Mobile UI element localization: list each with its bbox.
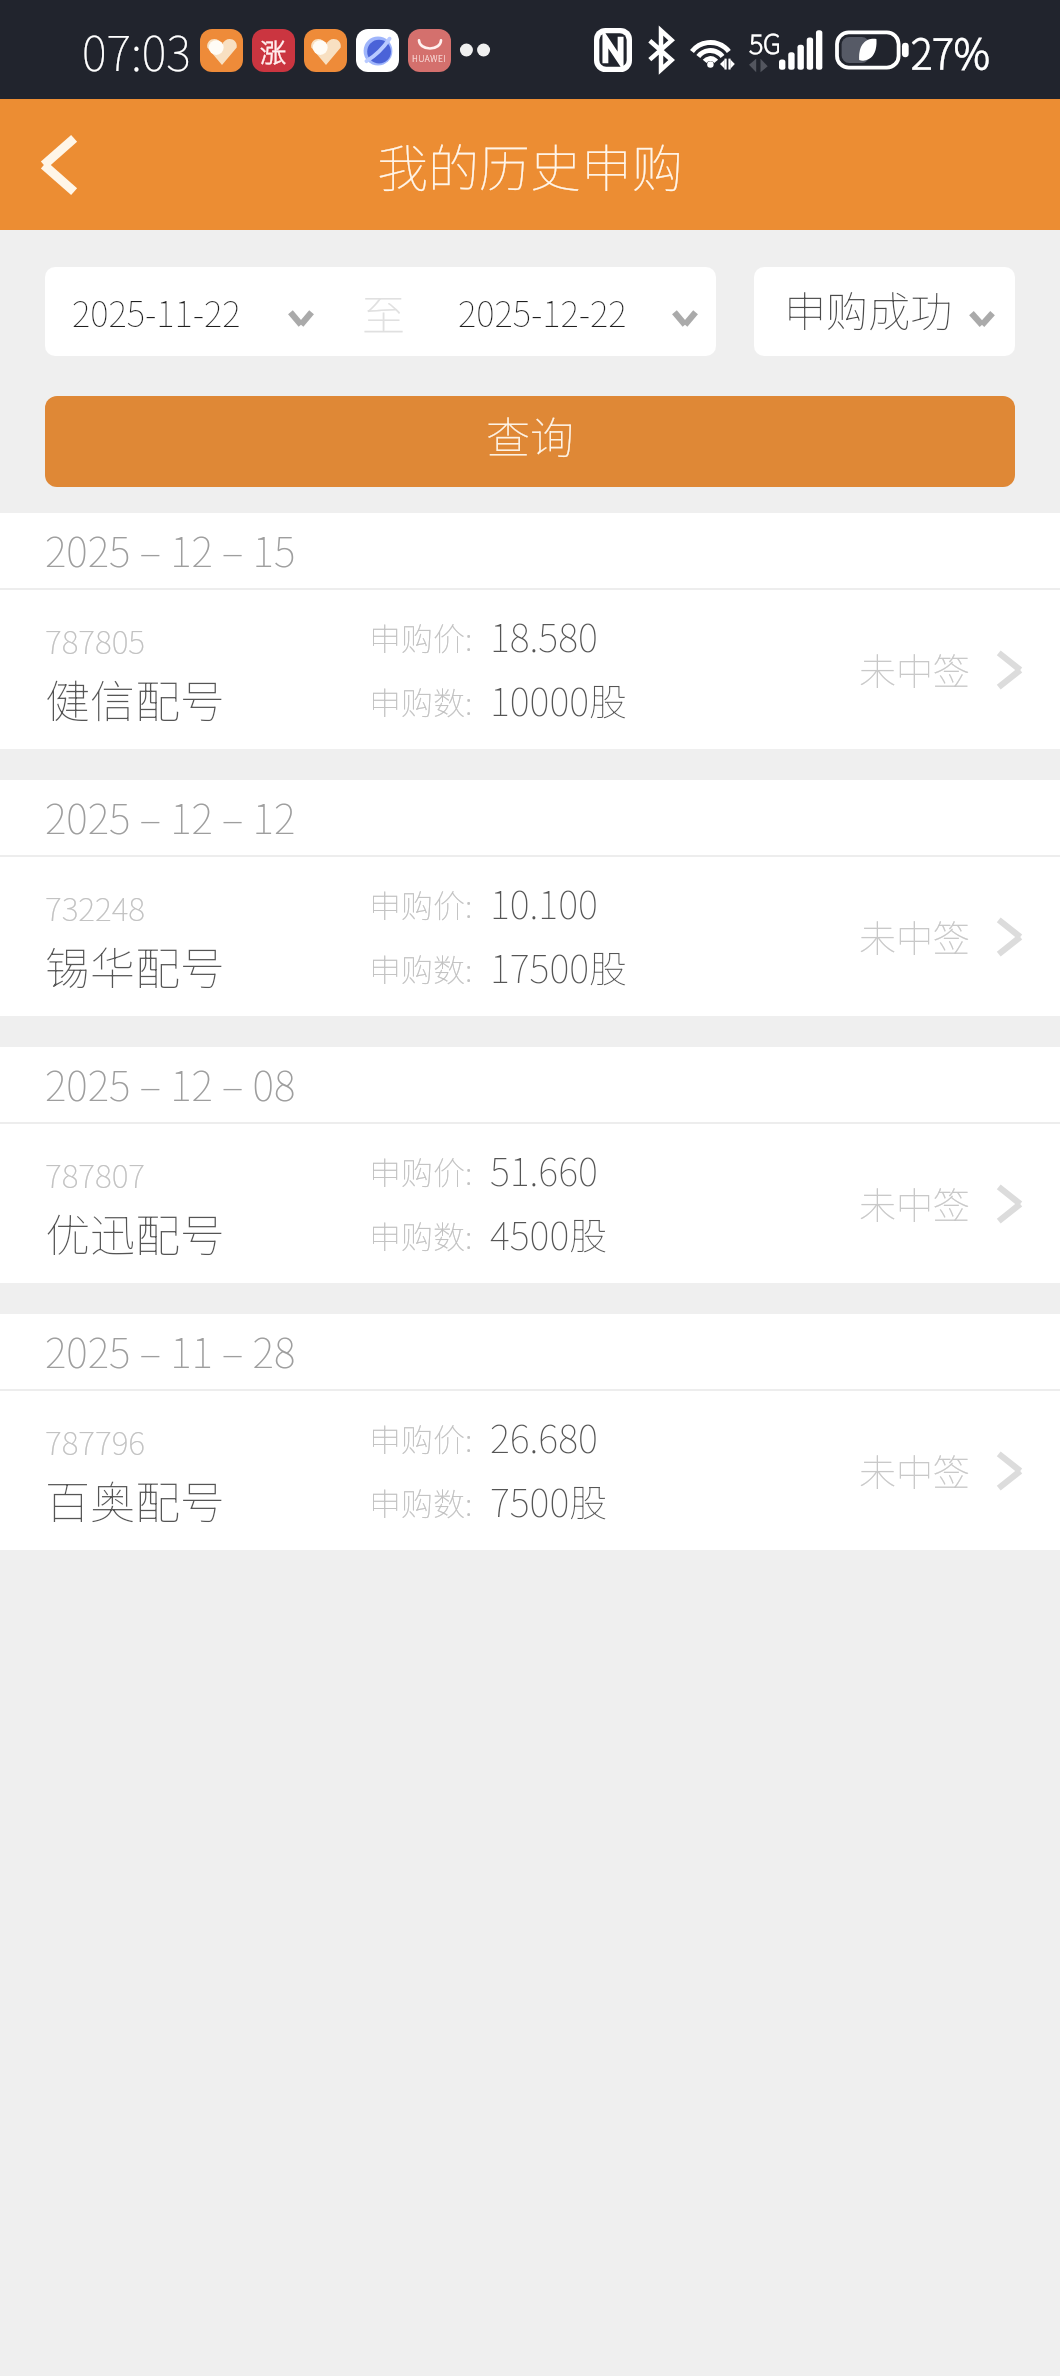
staticText: 未中签 [859,909,970,963]
staticText: 18.580 [490,608,598,663]
staticText: 5G [749,23,779,62]
staticText: HUAWEI [412,52,447,64]
staticText: 787807 [45,1151,146,1197]
button[interactable]: 查询 [45,396,1015,487]
staticText: 2025 – 12 – 15 [45,519,296,578]
staticText: 7500股 [490,1473,608,1528]
staticText: 百奥配号 [45,1467,226,1532]
staticText: 10000股 [490,672,627,727]
staticText: 未中签 [859,1443,970,1497]
staticText: 17500股 [490,939,627,994]
staticText: 787796 [45,1418,146,1464]
staticText: 申购成功 [784,278,953,339]
staticText: 查询 [486,403,574,467]
staticText: 至 [362,281,405,343]
staticText: 07:03 [82,16,191,84]
staticText: 涨 [260,32,287,70]
staticText: 申购价: [369,614,473,660]
staticText: 10.100 [490,875,598,930]
staticText: 健信配号 [45,666,226,731]
staticText: 申购数: [369,1479,473,1525]
staticText: 申购价: [369,881,473,927]
button[interactable]: 787807 [0,1124,1060,1283]
staticText: 申购数: [369,1212,473,1258]
staticText: 未中签 [859,1176,970,1230]
staticText: 未中签 [859,642,970,696]
button[interactable]: 2025-11-22 [45,267,340,356]
staticText: 2025-11-22 [72,286,241,337]
button[interactable]: 787805 [0,590,1060,749]
staticText: 申购数: [369,678,473,724]
staticText: 申购数: [369,945,473,991]
staticText: 2025 – 11 – 28 [45,1320,296,1379]
staticText: 申购价: [369,1415,473,1461]
staticText: 优迅配号 [45,1200,226,1265]
staticText: 我的历史申购 [377,128,684,202]
button[interactable]: 787796 [0,1391,1060,1550]
button[interactable]: 2025-12-22 [410,267,697,356]
staticText: 26.680 [490,1409,598,1464]
staticText: 787805 [45,617,146,663]
staticText: 申购价: [369,1148,473,1194]
staticText: 4500股 [490,1206,608,1261]
button[interactable]: 申购成功 [754,267,1015,356]
staticText: 2025-12-22 [458,286,627,337]
button[interactable]: Back [18,124,100,206]
staticText: 2025 – 12 – 08 [45,1053,296,1112]
staticText: 27% [911,21,990,80]
staticText: 2025 – 12 – 12 [45,786,296,845]
staticText: 锡华配号 [45,933,226,998]
staticText: 51.660 [490,1142,598,1197]
button[interactable]: 732248 [0,857,1060,1016]
staticText: 732248 [45,884,146,930]
